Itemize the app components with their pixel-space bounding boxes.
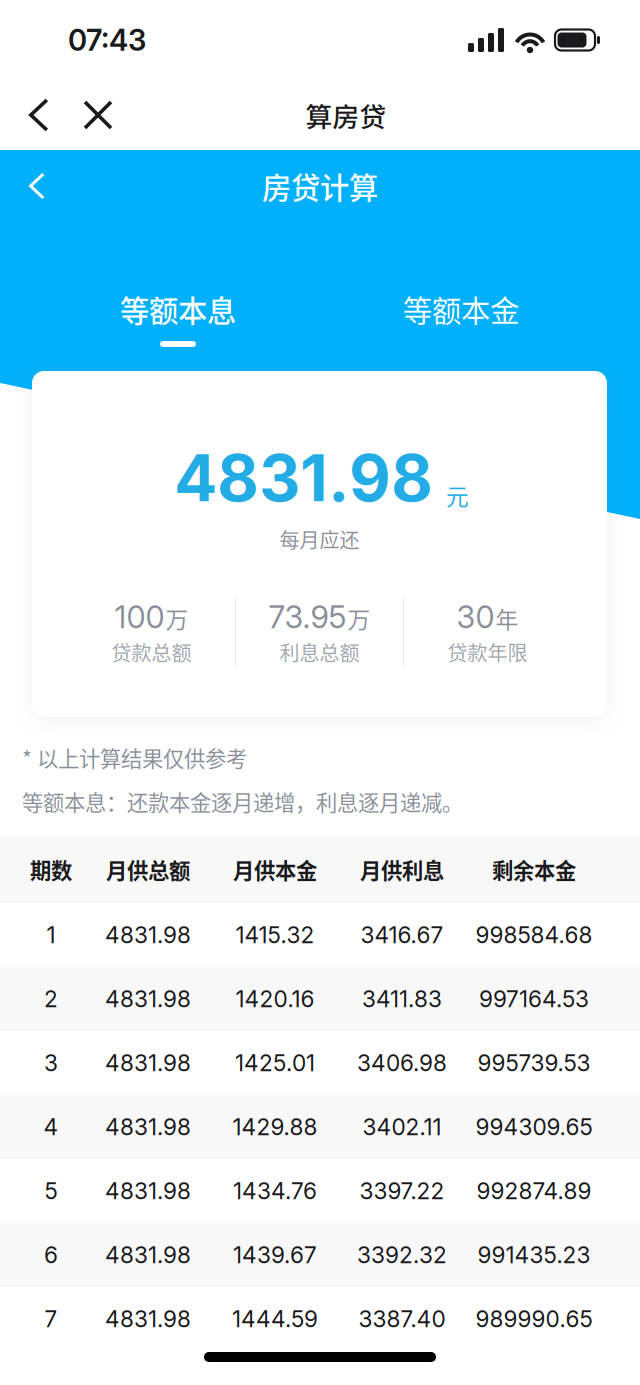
staticText: 4831.98: [105, 1113, 191, 1141]
staticText: 5: [44, 1177, 57, 1205]
staticText: 3402.11: [362, 1113, 441, 1141]
staticText: 989990.65: [475, 1305, 592, 1333]
staticText: 3387.40: [358, 1305, 445, 1333]
staticText: 1415.32: [235, 921, 314, 949]
staticText: 995739.53: [477, 1049, 590, 1077]
staticText: 4831.98: [105, 921, 191, 949]
staticText: 贷款总额: [111, 637, 191, 666]
staticText: 992874.89: [476, 1177, 591, 1205]
staticText: 30: [456, 598, 494, 635]
staticText: 年: [495, 602, 518, 635]
staticText: 元: [446, 479, 469, 512]
staticText: 算房贷: [305, 96, 386, 134]
staticText: 万: [347, 602, 370, 635]
staticText: 3406.98: [357, 1049, 447, 1077]
staticText: 998584.68: [475, 921, 592, 949]
staticText: 等额本息: [120, 288, 236, 330]
staticText: 991435.23: [477, 1241, 590, 1269]
staticText: 3397.22: [359, 1177, 444, 1205]
staticText: 贷款年限: [447, 637, 527, 666]
staticText: 4831.98: [105, 1177, 191, 1205]
button[interactable]: Close: [74, 83, 122, 147]
button[interactable]: Back: [14, 83, 62, 147]
button[interactable]: 等额本金: [356, 291, 566, 349]
staticText: 3: [44, 1049, 58, 1077]
staticText: 2: [44, 985, 58, 1013]
staticText: 3392.32: [357, 1241, 447, 1269]
staticText: 1420.16: [235, 985, 314, 1013]
button[interactable]: 等额本息: [0, 291, 356, 349]
staticText: 1439.67: [233, 1241, 317, 1269]
staticText: 7: [44, 1305, 57, 1333]
staticText: 房贷计算: [262, 165, 378, 207]
button[interactable]: Back: [12, 160, 60, 212]
staticText: 1: [46, 921, 55, 949]
staticText: 3416.67: [360, 921, 443, 949]
staticText: 期数: [30, 854, 72, 885]
staticText: 1425.01: [235, 1049, 315, 1077]
staticText: 月供利息: [360, 854, 444, 885]
staticText: 100: [114, 598, 164, 635]
staticText: 1429.88: [232, 1113, 317, 1141]
staticText: 万: [165, 602, 188, 635]
staticText: 4831.98: [105, 1049, 191, 1077]
staticText: 等额本息：还款本金逐月递增，利息逐月递减。: [22, 786, 463, 817]
staticText: 6: [44, 1241, 58, 1269]
staticText: 月供本金: [233, 854, 317, 885]
staticText: 07:43: [68, 22, 146, 58]
staticText: 每月应还: [279, 524, 359, 553]
staticText: 利息总额: [279, 637, 359, 666]
staticText: 1444.59: [232, 1305, 318, 1333]
staticText: 3411.83: [362, 985, 442, 1013]
staticText: 4831.98: [105, 985, 191, 1013]
staticText: 4831.98: [174, 439, 433, 517]
staticText: 1434.76: [233, 1177, 317, 1205]
staticText: 994309.65: [475, 1113, 592, 1141]
staticText: 4831.98: [105, 1305, 191, 1333]
staticText: * 以上计算结果仅供参考: [22, 742, 247, 773]
staticText: 4: [43, 1113, 58, 1141]
staticText: 月供总额: [106, 854, 190, 885]
staticText: 73.95: [268, 598, 346, 635]
staticText: 4831.98: [105, 1241, 191, 1269]
staticText: 等额本金: [403, 288, 519, 330]
staticText: 剩余本金: [492, 854, 576, 885]
staticText: 997164.53: [479, 985, 589, 1013]
